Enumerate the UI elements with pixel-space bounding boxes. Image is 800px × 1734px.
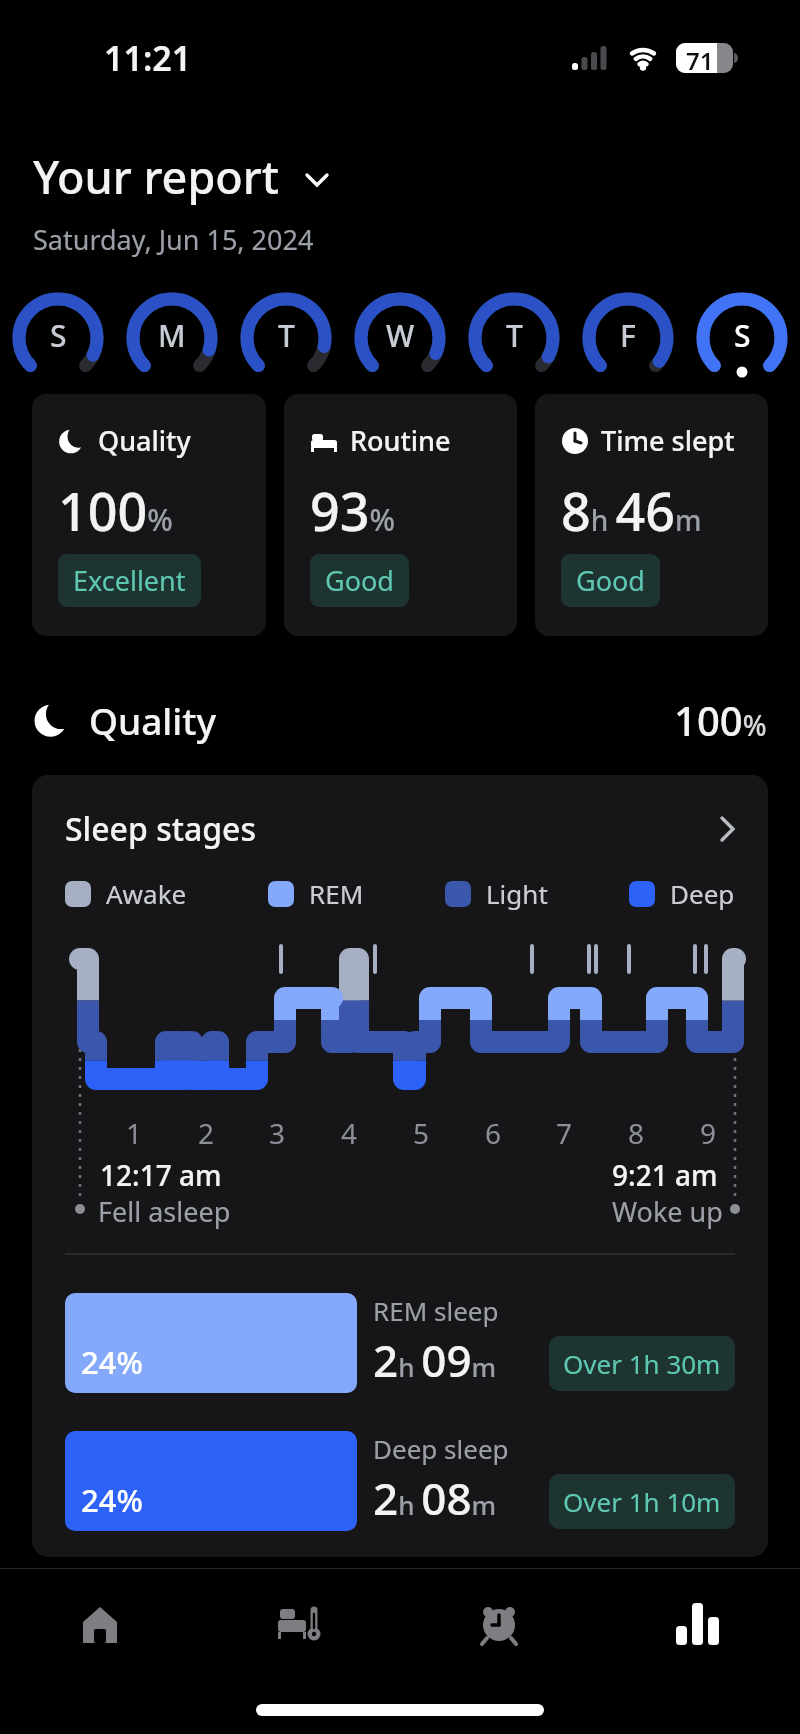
button[interactable]: W [354, 292, 446, 384]
button[interactable] [455, 1592, 543, 1656]
staticText: 8h 46m [561, 475, 702, 546]
button[interactable]: Good [310, 554, 409, 607]
staticText: Awake [106, 876, 187, 911]
staticText: 9 [700, 1114, 717, 1152]
staticText: Good [325, 562, 394, 599]
button[interactable]: M [126, 292, 218, 384]
button[interactable]: Your report [33, 146, 328, 207]
staticText: 93% [310, 475, 396, 546]
button[interactable]: 24% [65, 1431, 735, 1531]
staticText: Over 1h 10m [563, 1484, 721, 1519]
button[interactable]: S [696, 292, 788, 384]
staticText: Deep [670, 876, 735, 911]
staticText: Light [486, 876, 548, 911]
staticText: 3 [269, 1114, 286, 1152]
button[interactable]: F [582, 292, 674, 384]
button[interactable]: Time slept [535, 394, 768, 636]
staticText: Sleep stages [65, 807, 257, 851]
staticText: 2h 09m [373, 1330, 497, 1390]
staticText: 8 [628, 1114, 645, 1152]
staticText: Deep sleep [373, 1431, 509, 1466]
button[interactable]: T [240, 292, 332, 384]
staticText: 9:21 am [612, 1156, 718, 1194]
button[interactable]: Sleep stages [65, 807, 735, 851]
staticText: F [620, 315, 636, 356]
staticText: M [158, 315, 186, 356]
staticText: Saturday, Jun 15, 2024 [33, 221, 314, 258]
staticText: Woke up [612, 1193, 723, 1230]
button[interactable]: Quality [32, 394, 266, 636]
staticText: T [506, 315, 523, 356]
staticText: 100% [58, 475, 173, 546]
button[interactable]: Routine [284, 394, 517, 636]
staticText: REM [309, 876, 364, 911]
staticText: 71 [686, 44, 714, 74]
button[interactable] [654, 1592, 742, 1656]
staticText: T [278, 315, 295, 356]
staticText: Over 1h 30m [563, 1346, 721, 1381]
button[interactable]: Excellent [58, 554, 201, 607]
staticText: 24% [81, 1341, 143, 1383]
staticText: 12:17 am [100, 1156, 222, 1194]
staticText: 4 [341, 1114, 358, 1152]
staticText: 2 [198, 1114, 215, 1152]
staticText: 100% [674, 693, 767, 747]
staticText: Excellent [73, 562, 186, 599]
staticText: 7 [556, 1114, 573, 1152]
button[interactable]: S [12, 292, 104, 384]
staticText: 6 [485, 1114, 502, 1152]
button[interactable] [255, 1592, 343, 1656]
staticText: REM sleep [373, 1293, 499, 1328]
staticText: W [386, 315, 415, 356]
staticText: Fell asleep [98, 1193, 231, 1230]
staticText: 2h 08m [373, 1468, 497, 1528]
staticText: Your report [33, 146, 280, 207]
staticText: S [50, 315, 67, 356]
button[interactable] [56, 1592, 144, 1656]
staticText: 24% [81, 1479, 143, 1521]
staticText: Quality [98, 422, 191, 459]
staticText: Routine [350, 422, 451, 459]
staticText: 1 [126, 1114, 143, 1152]
staticText: 11:21 [104, 35, 192, 81]
button[interactable]: 24% [65, 1293, 735, 1393]
button[interactable]: Good [561, 554, 660, 607]
staticText: Quality [89, 695, 217, 745]
staticText: S [734, 315, 751, 356]
staticText: Time slept [601, 422, 735, 459]
button[interactable]: Over 1h 30m [549, 1336, 735, 1391]
button[interactable]: T [468, 292, 560, 384]
staticText: 5 [413, 1114, 430, 1152]
button[interactable]: Over 1h 10m [549, 1474, 735, 1529]
staticText: Good [576, 562, 645, 599]
